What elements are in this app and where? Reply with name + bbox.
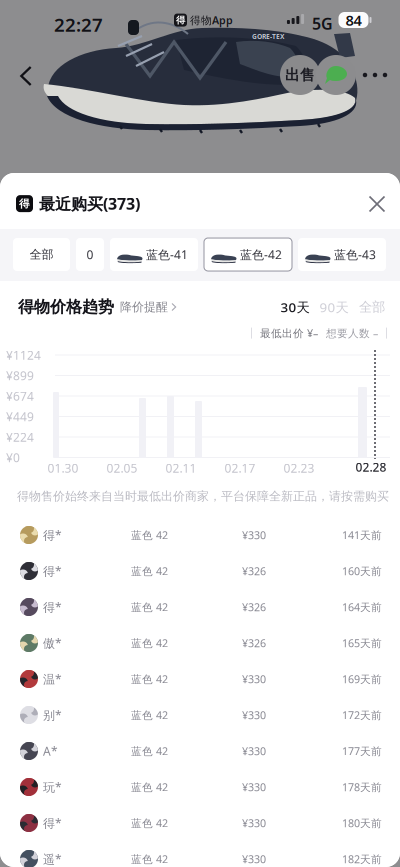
staticText: 01.30 xyxy=(47,460,78,476)
button[interactable]: 蓝色-41 xyxy=(110,238,198,271)
staticText: ¥330 xyxy=(242,708,266,722)
button[interactable]: 温* xyxy=(0,661,400,697)
staticText: ¥224 xyxy=(6,429,34,445)
staticText: 84 xyxy=(345,10,361,30)
staticText: 蓝色 42 xyxy=(131,528,168,542)
staticText: 得物售价始终来自当时最低出价商家，平台保障全新正品，请按需购买 xyxy=(17,489,389,504)
button[interactable]: 降价提醒 xyxy=(120,292,178,322)
button[interactable]: 玩* xyxy=(0,769,400,805)
button[interactable]: Share to WeChat xyxy=(316,55,356,95)
staticText: 得* xyxy=(43,563,62,579)
button[interactable]: 得* xyxy=(0,805,400,841)
staticText: ¥326 xyxy=(242,636,266,650)
button[interactable]: 得* xyxy=(0,589,400,625)
staticText: 90天 xyxy=(319,298,348,316)
staticText: 蓝色 42 xyxy=(131,600,168,614)
staticText: 02.23 xyxy=(283,460,314,476)
staticText: 得 xyxy=(19,197,30,210)
staticText: GORE-TEX xyxy=(252,32,284,41)
staticText: 蓝色 42 xyxy=(131,672,168,686)
button[interactable]: 30天 xyxy=(280,292,310,322)
button[interactable]: Back xyxy=(7,57,45,95)
button[interactable]: 全部 xyxy=(357,292,387,322)
button[interactable]: 得* xyxy=(0,553,400,589)
staticText: 得物App xyxy=(190,13,233,27)
button[interactable]: A* xyxy=(0,733,400,769)
button[interactable]: Close xyxy=(358,185,396,223)
button[interactable]: More options xyxy=(358,58,392,92)
staticText: 164天前 xyxy=(342,600,382,614)
staticText: ¥330 xyxy=(242,672,266,686)
staticText: 温* xyxy=(43,671,62,687)
staticText: 得 xyxy=(176,14,185,26)
staticText: 得* xyxy=(43,599,62,615)
staticText: 169天前 xyxy=(342,672,382,686)
staticText: 玩* xyxy=(43,779,62,795)
button[interactable]: 遥* xyxy=(0,841,400,867)
staticText: ¥899 xyxy=(6,367,34,383)
staticText: 最近购买(373) xyxy=(39,193,140,214)
staticText: 傲* xyxy=(43,635,62,651)
staticText: 蓝色 42 xyxy=(131,852,168,866)
staticText: A* xyxy=(43,743,58,759)
staticText: 蓝色 42 xyxy=(131,708,168,722)
staticText: 遥* xyxy=(43,851,62,867)
staticText: 02.17 xyxy=(224,460,255,476)
staticText: ¥330 xyxy=(242,528,266,542)
staticText: 178天前 xyxy=(342,780,382,794)
staticText: ¥330 xyxy=(242,780,266,794)
staticText: 蓝色 42 xyxy=(131,744,168,758)
staticText: ¥449 xyxy=(6,408,34,424)
staticText: 180天前 xyxy=(342,816,382,830)
staticText: 想要人数 – xyxy=(326,326,378,340)
staticText: ¥330 xyxy=(242,852,266,866)
staticText: 02.05 xyxy=(106,460,137,476)
staticText: 蓝色 42 xyxy=(131,780,168,794)
staticText: ¥330 xyxy=(242,744,266,758)
staticText: 得物价格趋势 xyxy=(18,297,114,317)
button[interactable]: 别* xyxy=(0,697,400,733)
staticText: 182天前 xyxy=(342,852,382,866)
staticText: 30天 xyxy=(280,298,309,316)
staticText: 蓝色 42 xyxy=(131,636,168,650)
staticText: 0 xyxy=(86,246,93,262)
staticText: 最低出价 ¥– xyxy=(260,326,318,340)
staticText: 蓝色-42 xyxy=(240,246,282,262)
staticText: 全部 xyxy=(359,299,385,315)
staticText: 全部 xyxy=(29,247,53,262)
staticText: ¥326 xyxy=(242,564,266,578)
staticText: 蓝色 42 xyxy=(131,564,168,578)
staticText: 蓝色-41 xyxy=(146,246,188,262)
staticText: 22:27 xyxy=(54,12,103,37)
button[interactable]: 出售 xyxy=(280,55,320,95)
button[interactable]: 傲* xyxy=(0,625,400,661)
button[interactable]: 得* xyxy=(0,517,400,553)
staticText: ¥674 xyxy=(6,388,34,404)
staticText: 5G xyxy=(312,13,333,34)
staticText: 02.28 xyxy=(355,459,386,475)
staticText: 得* xyxy=(43,527,62,543)
staticText: 165天前 xyxy=(342,636,382,650)
staticText: 蓝色-43 xyxy=(334,246,376,262)
staticText: 02.11 xyxy=(165,460,196,476)
staticText: ¥330 xyxy=(242,816,266,830)
button[interactable]: 全部 xyxy=(13,238,70,271)
staticText: 别* xyxy=(43,707,62,723)
staticText: 蓝色 42 xyxy=(131,816,168,830)
staticText: 160天前 xyxy=(342,564,382,578)
staticText: ¥1124 xyxy=(6,347,41,363)
staticText: 177天前 xyxy=(342,744,382,758)
staticText: 出售 xyxy=(285,66,315,84)
button[interactable]: 蓝色-43 xyxy=(298,238,386,271)
staticText: 得* xyxy=(43,815,62,831)
staticText: ¥0 xyxy=(6,449,20,465)
staticText: 172天前 xyxy=(342,708,382,722)
button[interactable]: 90天 xyxy=(319,292,349,322)
button[interactable]: 蓝色-42 xyxy=(204,238,292,271)
button[interactable]: 0 xyxy=(76,238,104,271)
staticText: 141天前 xyxy=(342,528,382,542)
staticText: 降价提醒 xyxy=(120,300,168,314)
staticText: ¥326 xyxy=(242,600,266,614)
